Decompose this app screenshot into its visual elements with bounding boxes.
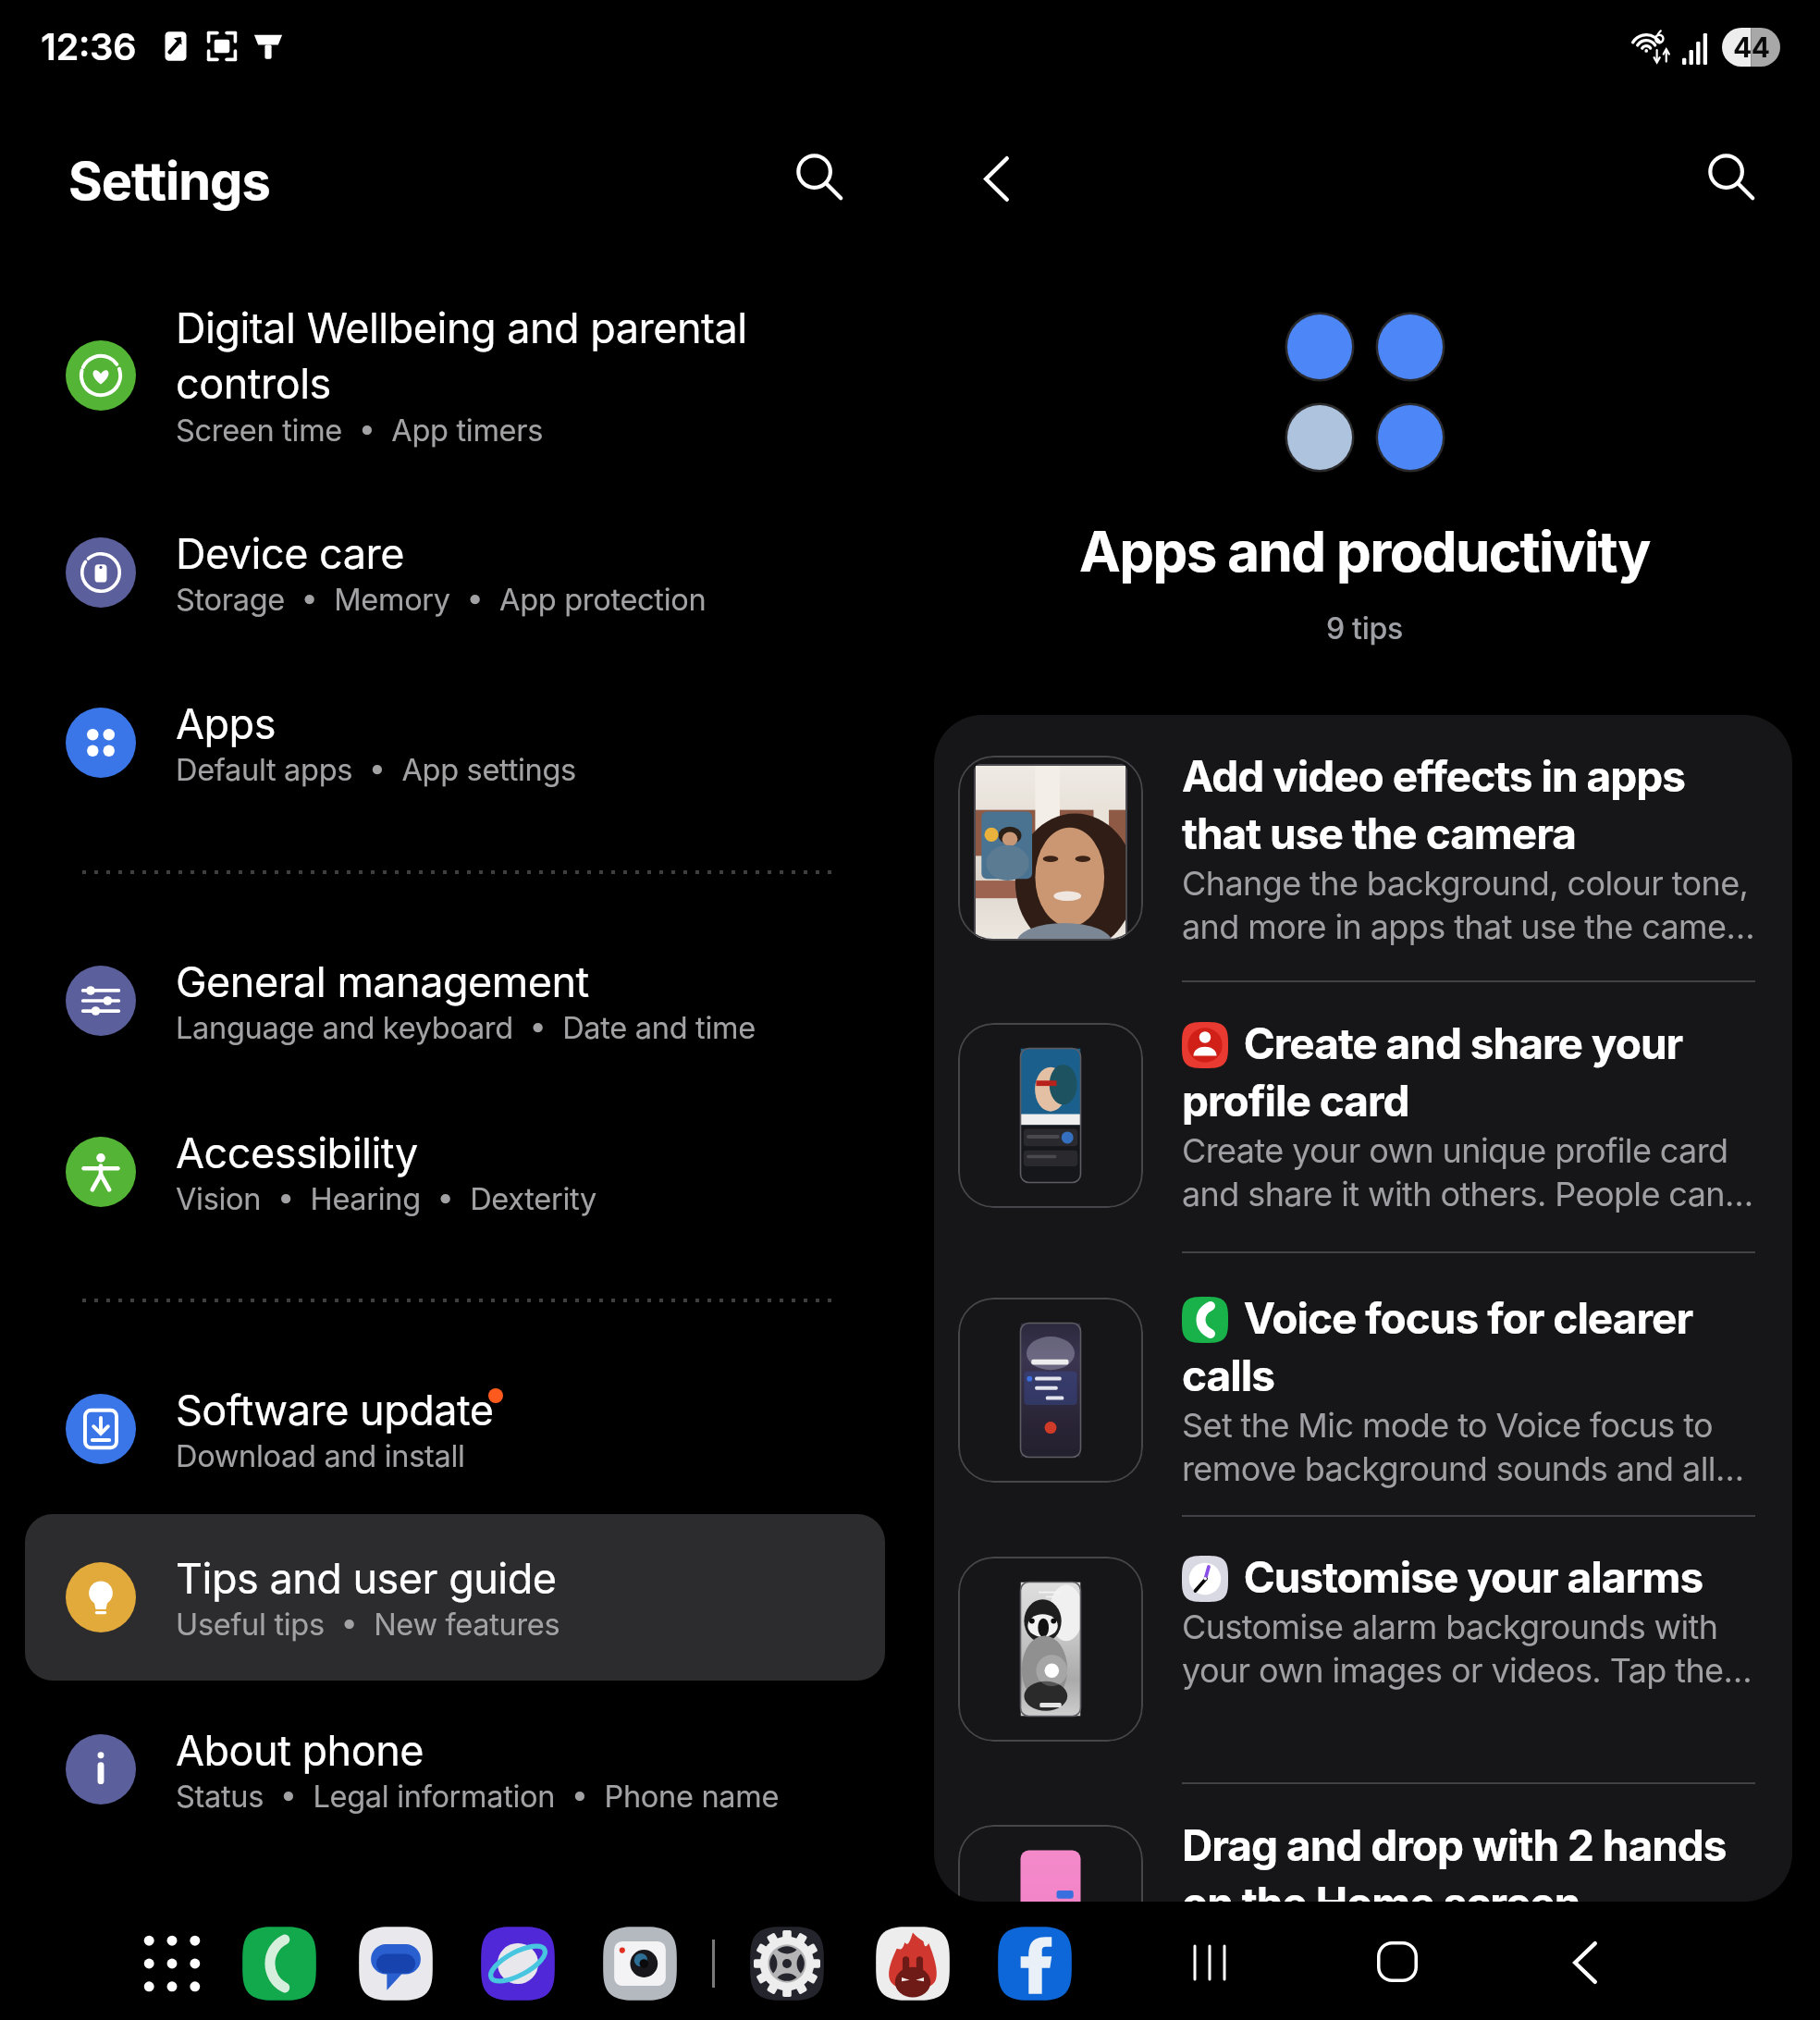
staticText: Set the Mic mode to Voice focus to remov… bbox=[1182, 1405, 1757, 1489]
staticText: *Create and share your profile card bbox=[1182, 1017, 1757, 1127]
button[interactable]: Camera bbox=[594, 1917, 686, 2010]
button[interactable]: Search tips bbox=[1689, 134, 1774, 219]
button[interactable]: Search bbox=[777, 134, 862, 219]
staticText: Create your own unique profile card and … bbox=[1182, 1130, 1757, 1214]
staticText: Add video effects in apps that use the c… bbox=[1182, 750, 1757, 859]
staticText: Change the background, colour tone, and … bbox=[1182, 863, 1757, 947]
staticText: Accessibility bbox=[176, 1127, 418, 1177]
staticText: 12:36 bbox=[41, 24, 137, 68]
staticText: Software update bbox=[176, 1385, 494, 1435]
button[interactable]: Apps bbox=[25, 663, 885, 822]
staticText: 9 tips bbox=[1326, 610, 1403, 647]
staticText: Screen time • App timers bbox=[176, 413, 543, 449]
staticText: Drag and drop with 2 hands on the Home s… bbox=[1182, 1819, 1757, 1902]
staticText: Language and keyboard • Date and time bbox=[176, 1010, 756, 1046]
button[interactable]: Benchmark bbox=[867, 1917, 959, 2010]
staticText: *Voice focus for clearer calls bbox=[1182, 1292, 1757, 1401]
button[interactable]: Add video effects in apps that use the c… bbox=[958, 756, 1772, 957]
button[interactable]: Digital Wellbeing and parental controls bbox=[25, 296, 885, 455]
staticText: Storage • Memory • App protection bbox=[176, 582, 707, 618]
button[interactable]: Phone bbox=[233, 1917, 326, 2010]
staticText: Digital Wellbeing and parental controls bbox=[176, 302, 749, 409]
staticText: Settings bbox=[68, 150, 270, 213]
staticText: Download and install bbox=[176, 1438, 465, 1474]
button[interactable]: General management bbox=[25, 921, 885, 1080]
staticText: Default apps • App settings bbox=[176, 752, 576, 788]
button[interactable]: Settings bbox=[741, 1917, 833, 2010]
button[interactable]: All apps bbox=[126, 1917, 218, 2010]
staticText: Useful tips • New features bbox=[176, 1607, 560, 1643]
button[interactable]: Software update bbox=[25, 1349, 885, 1509]
staticText: Customise alarm backgrounds with your ow… bbox=[1182, 1607, 1757, 1691]
button[interactable]: Recents bbox=[1162, 1915, 1258, 2011]
staticText: Status • Legal information • Phone name bbox=[176, 1779, 780, 1815]
staticText: 44 bbox=[1733, 31, 1770, 64]
button[interactable]: Internet bbox=[472, 1917, 564, 2010]
button[interactable]: Facebook bbox=[989, 1917, 1081, 2010]
button[interactable]: Messages bbox=[350, 1917, 442, 2010]
button[interactable]: Back bbox=[1537, 1915, 1633, 2011]
button[interactable]: Device care bbox=[25, 493, 885, 652]
staticText: Apps and productivity bbox=[1079, 518, 1650, 585]
button[interactable]: Tips and user guide bbox=[25, 1514, 885, 1681]
button[interactable]: Home bbox=[1349, 1914, 1445, 2010]
button[interactable]: Back bbox=[953, 136, 1039, 221]
staticText: General management bbox=[176, 956, 589, 1006]
button[interactable]: *Customise your alarms bbox=[958, 1557, 1772, 1758]
staticText: Vision • Hearing • Dexterity bbox=[176, 1181, 596, 1217]
button[interactable]: *Create and share your profile card bbox=[958, 1023, 1772, 1225]
button[interactable]: About phone bbox=[25, 1690, 885, 1849]
button[interactable]: Drag and drop with 2 hands on the Home s… bbox=[958, 1825, 1772, 1902]
staticText: About phone bbox=[176, 1725, 424, 1775]
staticText: Device care bbox=[176, 528, 404, 578]
button[interactable]: Accessibility bbox=[25, 1092, 885, 1251]
staticText: Apps bbox=[176, 698, 276, 748]
staticText: *Customise your alarms bbox=[1182, 1551, 1757, 1603]
staticText: Tips and user guide bbox=[176, 1553, 557, 1603]
button[interactable]: *Voice focus for clearer calls bbox=[958, 1298, 1772, 1499]
